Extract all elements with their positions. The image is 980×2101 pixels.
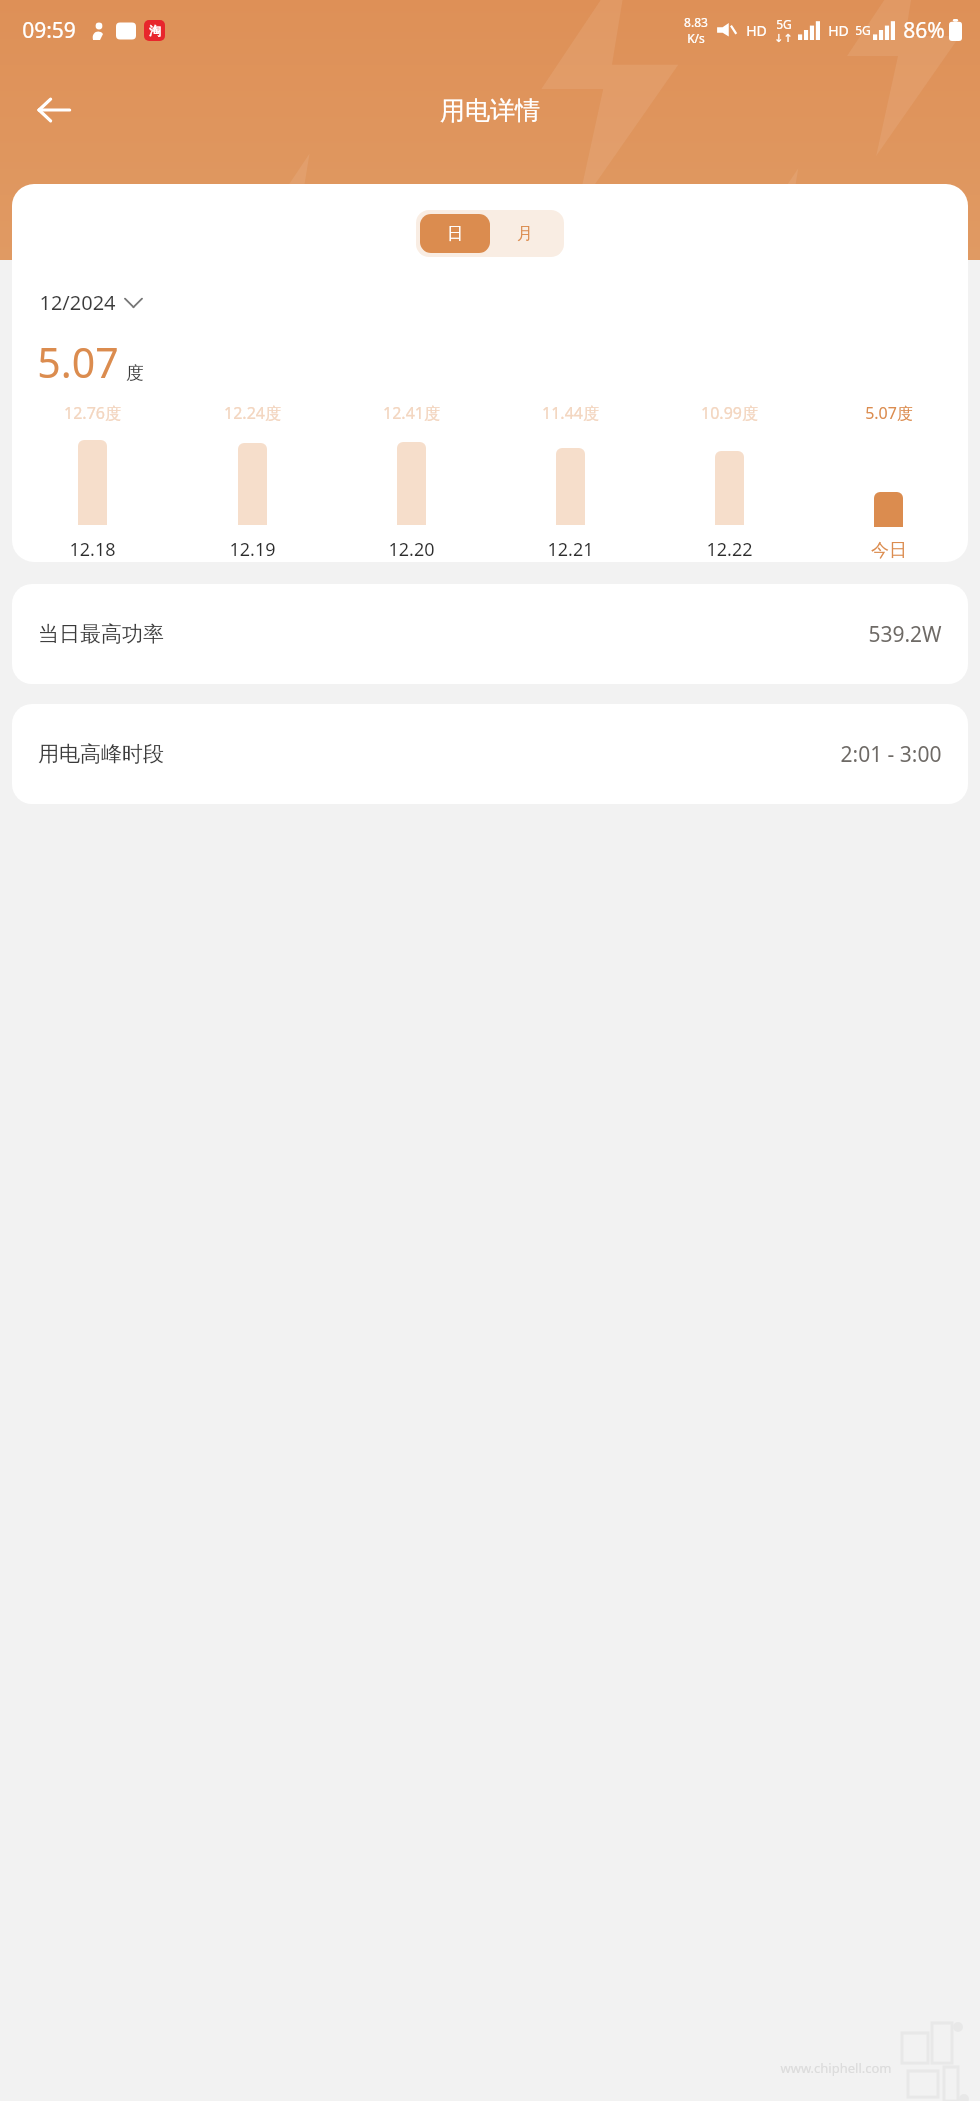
button[interactable]: Back: [22, 78, 86, 142]
staticText: 用电详情: [440, 95, 540, 126]
button[interactable]: 月: [490, 214, 560, 253]
staticText: 用电高峰时段: [38, 741, 164, 767]
staticText: 5.07: [37, 334, 119, 390]
staticText: 今日: [871, 539, 907, 562]
staticText: 2:01 - 3:00: [840, 740, 942, 769]
staticText: 淘: [149, 23, 161, 38]
staticText: 86%: [903, 16, 945, 45]
staticText: 12.18: [69, 537, 116, 562]
staticText: 12.19: [229, 537, 276, 562]
staticText: 539.2W: [868, 620, 942, 649]
staticText: HD: [828, 21, 849, 40]
staticText: 12.21: [547, 537, 594, 562]
staticText: 10.99度: [701, 402, 758, 424]
staticText: ↓↑: [774, 32, 793, 45]
button[interactable]: 当日最高功率: [12, 584, 968, 684]
button[interactable]: 用电高峰时段: [12, 704, 968, 804]
staticText: 日: [447, 224, 463, 244]
staticText: 11.44度: [542, 402, 599, 424]
staticText: 12.22: [706, 537, 753, 562]
staticText: 12.20: [388, 537, 435, 562]
staticText: 12.76度: [64, 402, 121, 424]
button[interactable]: 日: [420, 214, 490, 253]
staticText: 当日最高功率: [38, 621, 164, 647]
staticText: K/s: [687, 30, 705, 46]
staticText: 12.24度: [224, 402, 281, 424]
staticText: 12.41度: [383, 402, 440, 424]
staticText: 8.83: [684, 14, 708, 30]
button[interactable]: 12/2024: [37, 287, 144, 318]
staticText: 5G: [776, 16, 792, 32]
staticText: 5.07度: [865, 402, 913, 424]
staticText: 12/2024: [39, 289, 116, 316]
staticText: www.chiphell.com: [780, 2059, 892, 2077]
staticText: HD: [746, 21, 767, 40]
staticText: 09:59: [22, 16, 76, 45]
staticText: 月: [517, 224, 533, 244]
staticText: 5G: [855, 22, 871, 38]
staticText: 度: [126, 362, 144, 385]
